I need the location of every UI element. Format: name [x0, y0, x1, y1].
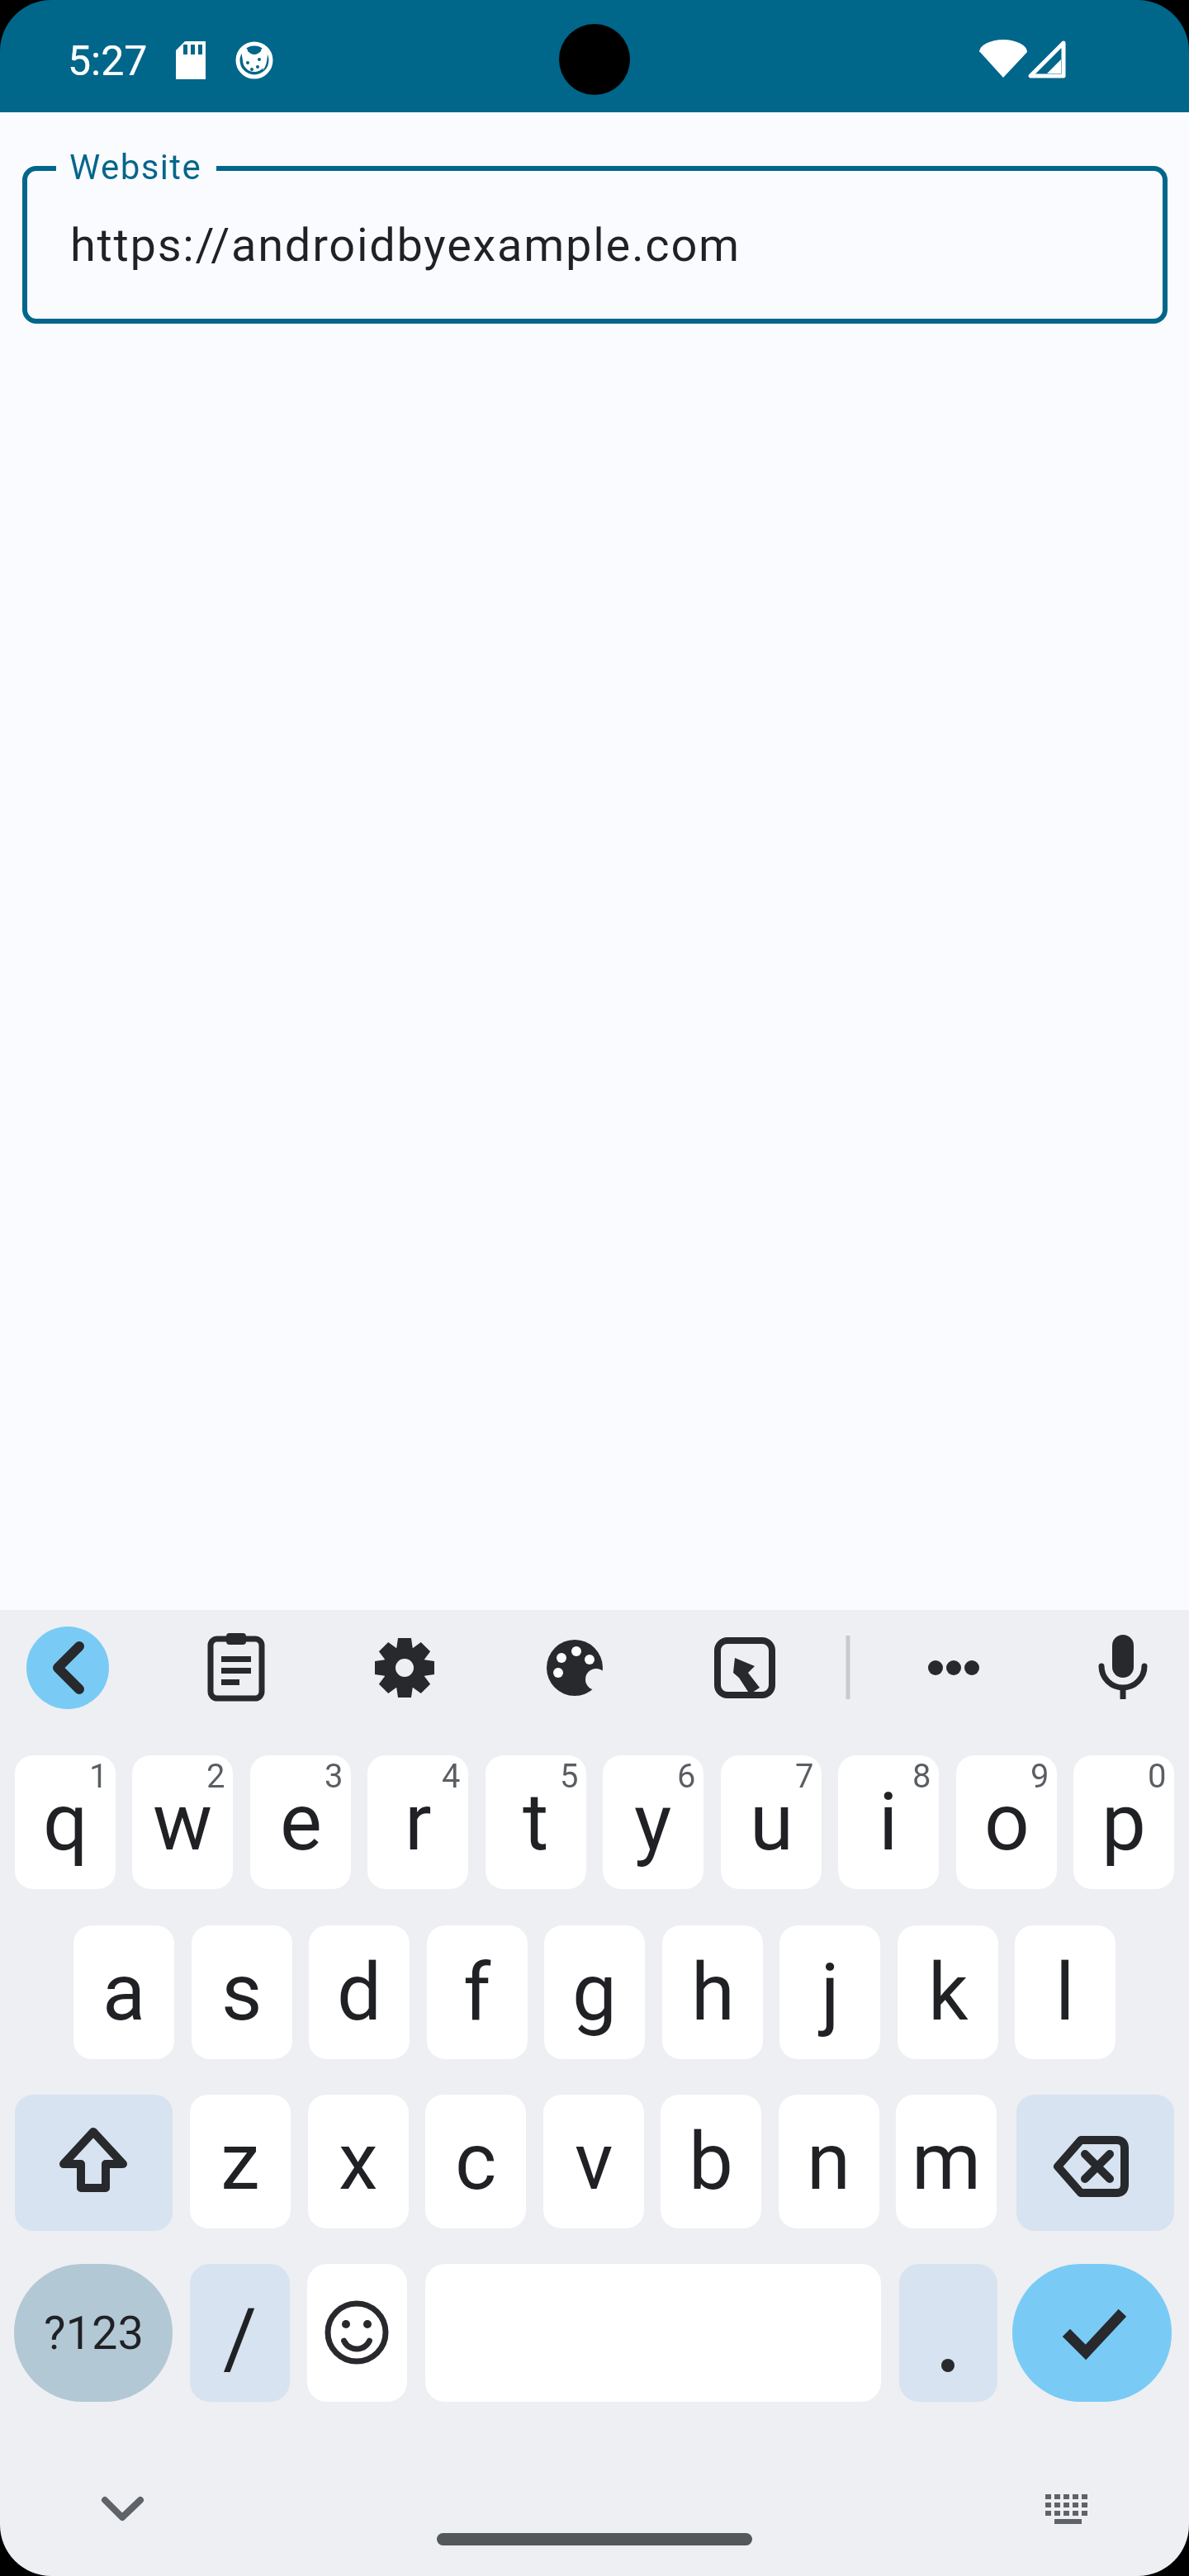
- button[interactable]: x: [308, 2095, 409, 2228]
- button[interactable]: k: [898, 1925, 998, 2059]
- button[interactable]: p: [1073, 1755, 1174, 1889]
- button[interactable]: [26, 1627, 109, 1709]
- button[interactable]: ?123: [14, 2264, 173, 2402]
- button[interactable]: o: [956, 1755, 1057, 1889]
- button[interactable]: w: [132, 1755, 233, 1889]
- button[interactable]: y: [603, 1755, 703, 1889]
- button[interactable]: [81, 2467, 163, 2550]
- staticText: s: [221, 1946, 263, 2039]
- staticText: k: [928, 1946, 969, 2039]
- staticText: ?123: [44, 2306, 144, 2361]
- button[interactable]: v: [543, 2095, 644, 2228]
- button[interactable]: [195, 1627, 277, 1709]
- button[interactable]: l: [1015, 1925, 1116, 2059]
- staticText: f: [463, 1946, 491, 2039]
- staticText: 2: [206, 1757, 225, 1796]
- button[interactable]: c: [425, 2095, 526, 2228]
- button[interactable]: h: [662, 1925, 763, 2059]
- button[interactable]: j: [779, 1925, 880, 2059]
- button[interactable]: [899, 2264, 997, 2402]
- staticText: a: [102, 1946, 146, 2039]
- button[interactable]: [907, 1627, 990, 1709]
- button[interactable]: e: [250, 1755, 351, 1889]
- button[interactable]: https://androidbyexample.com: [25, 168, 1165, 321]
- staticText: d: [337, 1946, 382, 2039]
- staticText: 4: [442, 1757, 461, 1796]
- button[interactable]: t: [486, 1755, 586, 1889]
- staticText: 9: [1030, 1757, 1049, 1796]
- button[interactable]: d: [309, 1925, 410, 2059]
- staticText: g: [572, 1946, 617, 2039]
- staticText: i: [879, 1776, 898, 1869]
- staticText: l: [1055, 1946, 1075, 2039]
- staticText: 0: [1148, 1757, 1167, 1796]
- button[interactable]: a: [73, 1925, 174, 2059]
- staticText: 7: [795, 1757, 814, 1796]
- staticText: z: [220, 2115, 260, 2209]
- staticText: c: [455, 2115, 497, 2209]
- staticText: r: [405, 1776, 432, 1869]
- staticText: j: [821, 1946, 840, 2039]
- button[interactable]: [703, 1627, 786, 1709]
- staticText: x: [339, 2115, 378, 2209]
- staticText: t: [523, 1776, 549, 1869]
- button[interactable]: /: [190, 2264, 290, 2402]
- staticText: 6: [677, 1757, 696, 1796]
- button[interactable]: s: [192, 1925, 292, 2059]
- button[interactable]: f: [427, 1925, 528, 2059]
- staticText: n: [807, 2115, 851, 2209]
- staticText: 5: [560, 1757, 579, 1796]
- staticText: p: [1101, 1776, 1146, 1869]
- staticText: 3: [324, 1757, 343, 1796]
- staticText: q: [43, 1776, 88, 1869]
- button[interactable]: m: [896, 2095, 997, 2228]
- staticText: m: [912, 2115, 982, 2209]
- button[interactable]: [1026, 2467, 1109, 2550]
- button[interactable]: r: [367, 1755, 468, 1889]
- staticText: 8: [912, 1757, 931, 1796]
- button[interactable]: [307, 2264, 407, 2402]
- button[interactable]: [1080, 1627, 1163, 1709]
- staticText: y: [634, 1776, 672, 1869]
- button[interactable]: n: [779, 2095, 879, 2228]
- staticText: v: [575, 2115, 613, 2209]
- button[interactable]: q: [15, 1755, 116, 1889]
- staticText: w: [153, 1776, 213, 1869]
- button[interactable]: b: [661, 2095, 761, 2228]
- staticText: e: [280, 1776, 322, 1869]
- button[interactable]: z: [190, 2095, 291, 2228]
- button[interactable]: [1016, 2095, 1174, 2231]
- button[interactable]: [363, 1627, 446, 1709]
- button[interactable]: g: [544, 1925, 645, 2059]
- staticText: b: [689, 2115, 733, 2209]
- staticText: u: [750, 1776, 793, 1869]
- staticText: 1: [89, 1757, 108, 1796]
- button[interactable]: [15, 2095, 173, 2231]
- staticText: Website: [69, 147, 202, 187]
- staticText: h: [691, 1946, 735, 2039]
- staticText: o: [984, 1776, 1030, 1869]
- button[interactable]: u: [721, 1755, 822, 1889]
- staticText: 5:27: [68, 37, 148, 86]
- button[interactable]: [1012, 2264, 1172, 2402]
- staticText: https://androidbyexample.com: [70, 218, 741, 272]
- button[interactable]: [533, 1627, 616, 1709]
- staticText: /: [223, 2290, 258, 2387]
- button[interactable]: i: [838, 1755, 939, 1889]
